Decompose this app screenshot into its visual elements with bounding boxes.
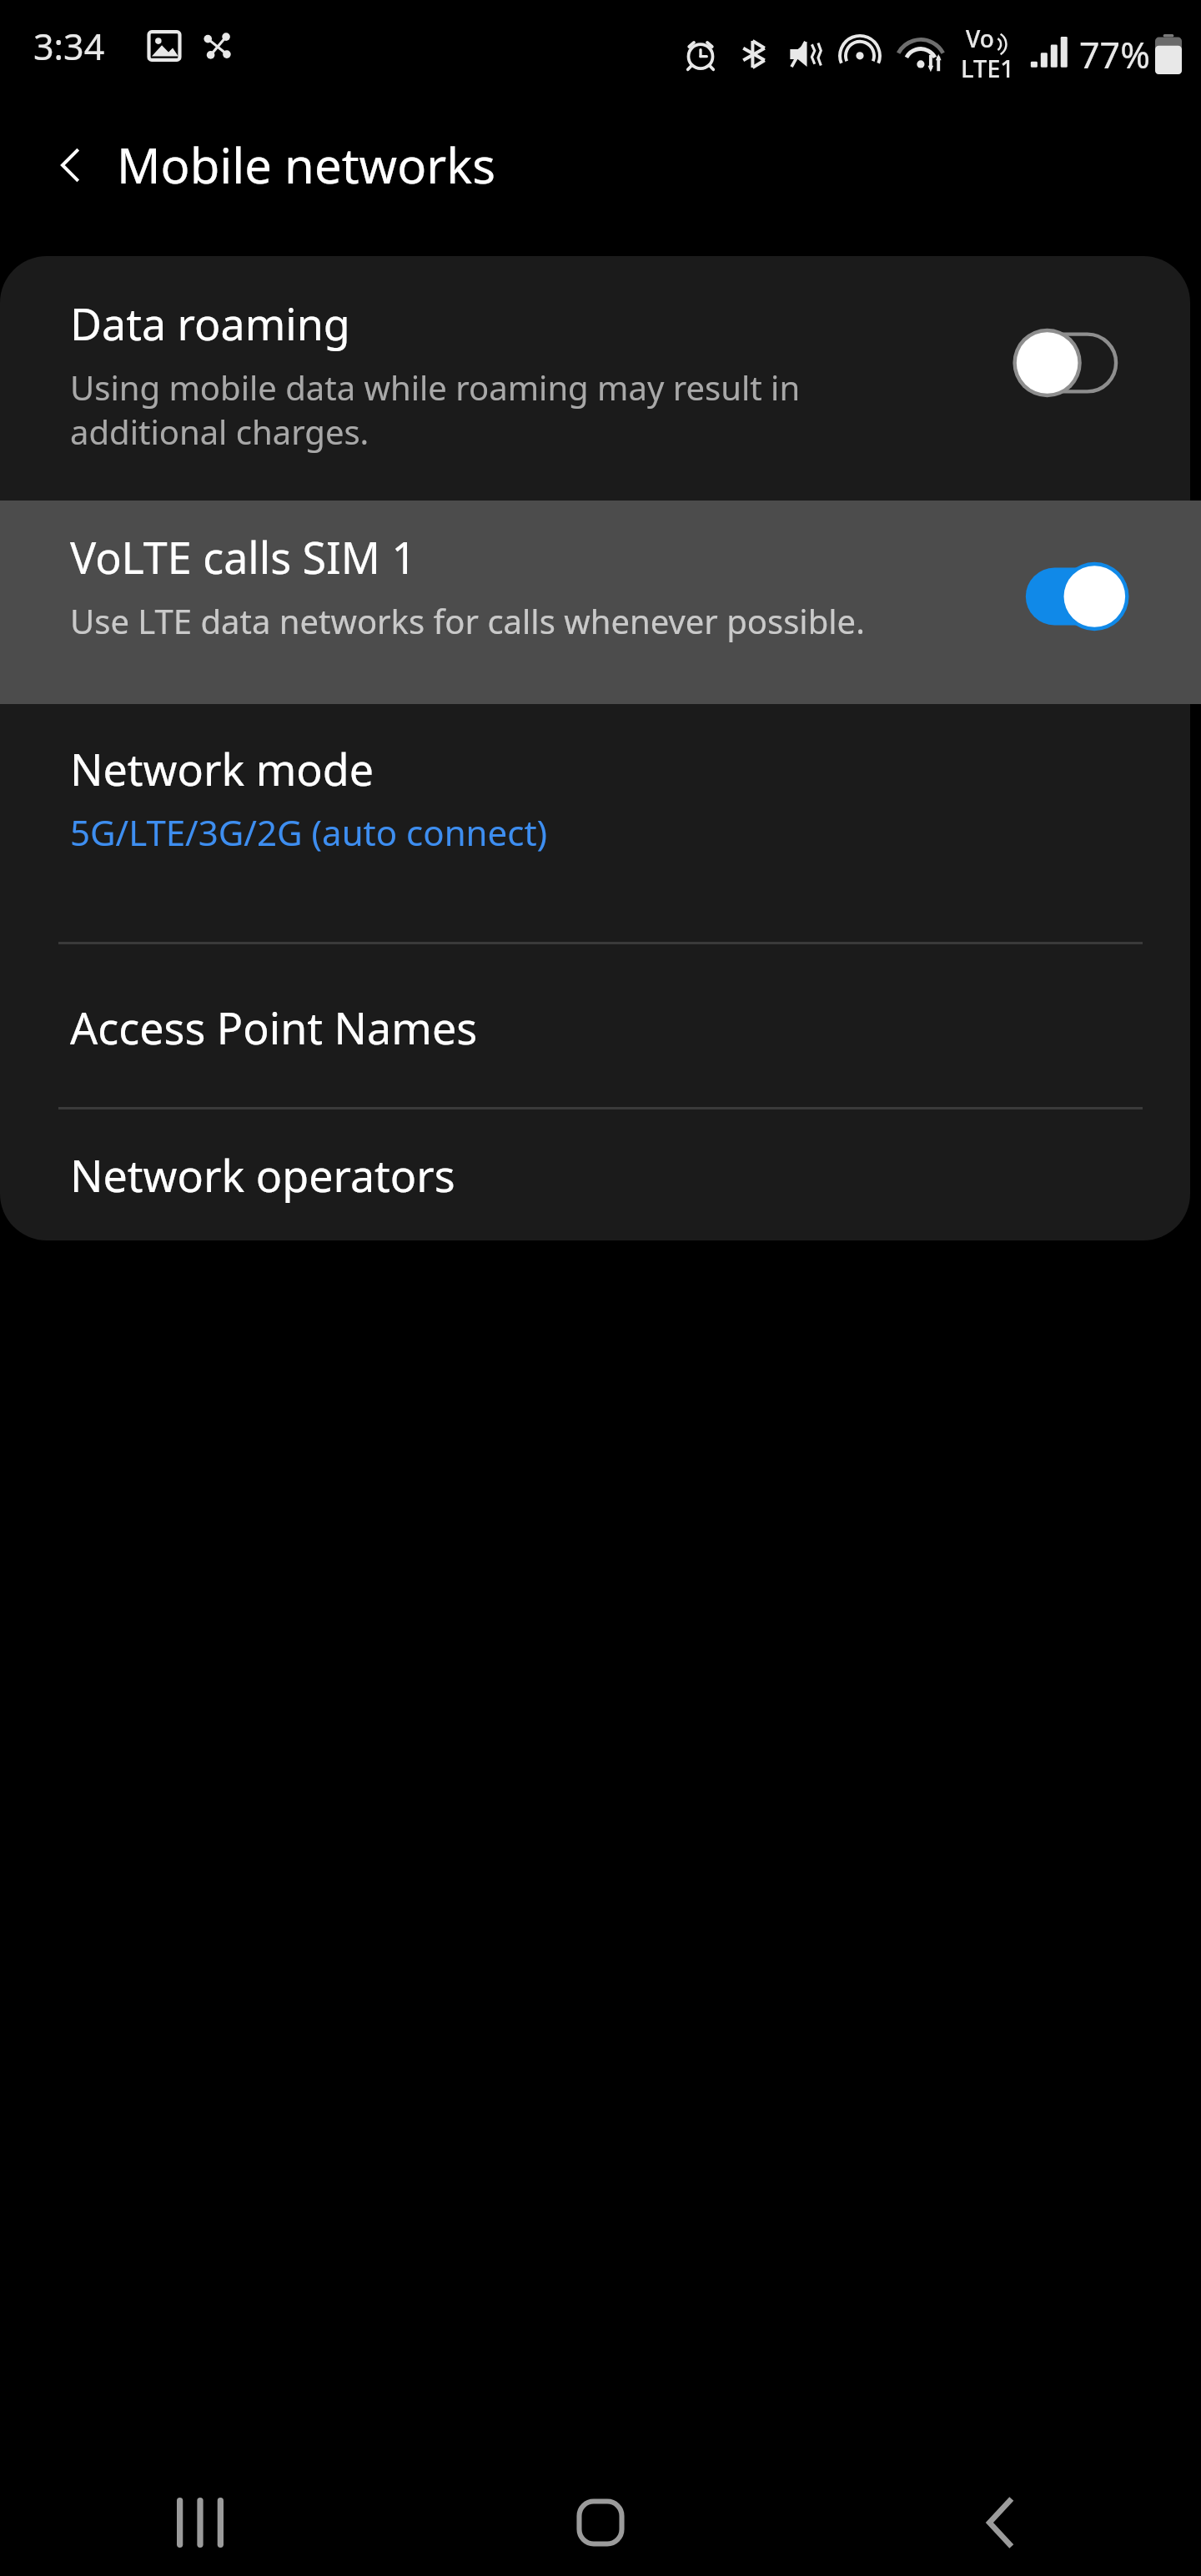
button[interactable]: Access Point Names (0, 944, 1201, 1109)
staticText: VoLTE calls SIM 1 (70, 527, 417, 586)
button[interactable]: VoLTE calls SIM 1 on (1005, 561, 1130, 632)
staticText: Network operators (70, 1145, 455, 1205)
button[interactable]: Data roaming (0, 256, 1201, 501)
button[interactable]: VoLTE calls SIM 1 (0, 501, 1201, 704)
button[interactable]: Network operators (0, 1109, 1201, 1240)
button[interactable]: Back (42, 136, 100, 194)
staticText: Using mobile data while roaming may resu… (70, 365, 801, 455)
button[interactable]: Data roaming off (1005, 327, 1130, 399)
staticText: 77% (1079, 30, 1150, 79)
staticText: LTE1 (961, 52, 1014, 84)
staticText: Use LTE data networks for calls whenever… (70, 598, 865, 643)
button[interactable]: Recent apps (0, 2469, 400, 2576)
staticText: Vo (966, 23, 994, 54)
button[interactable]: Home (400, 2469, 801, 2576)
staticText: 3:34 (33, 22, 105, 71)
button[interactable]: Network mode (0, 704, 1201, 944)
staticText: Mobile networks (117, 132, 495, 198)
staticText: Network mode (70, 739, 374, 798)
button[interactable]: Back (801, 2469, 1201, 2576)
staticText: 5G/LTE/3G/2G (auto connect) (70, 808, 548, 856)
staticText: Data roaming (70, 294, 350, 353)
staticText: Access Point Names (70, 998, 478, 1057)
